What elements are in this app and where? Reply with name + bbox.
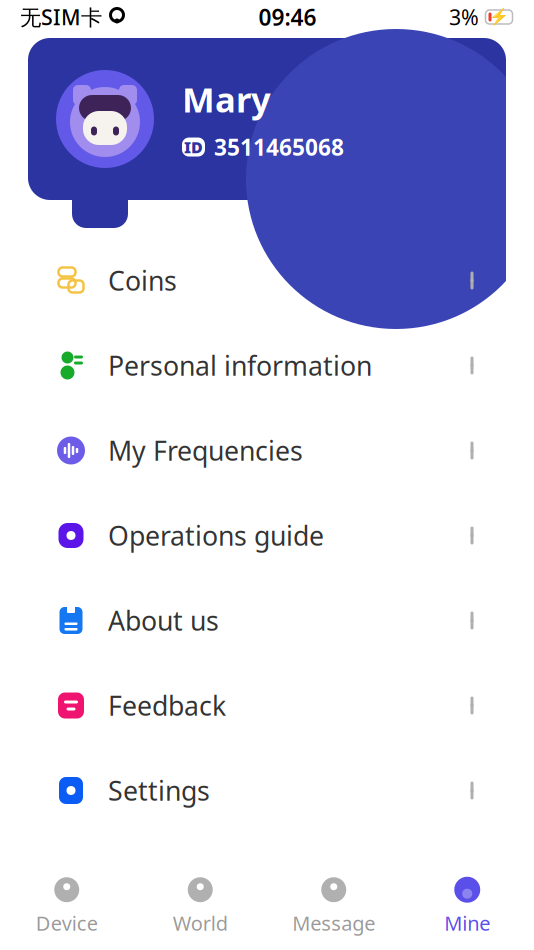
button[interactable]: World (133, 876, 267, 936)
staticText: 3511465068 (214, 132, 344, 162)
button[interactable]: Settings (0, 748, 534, 833)
button[interactable]: About us (0, 578, 534, 663)
staticText: Message (292, 910, 375, 936)
staticText: Operations guide (108, 518, 324, 553)
button[interactable]: My Frequencies (0, 408, 534, 493)
staticText: Feedback (108, 688, 226, 723)
staticText: ID (184, 136, 203, 158)
button[interactable]: Mine (400, 876, 534, 936)
staticText: Device (36, 910, 98, 936)
staticText: Coins (108, 263, 177, 298)
staticText: 09:46 (258, 2, 316, 32)
staticText: World (173, 910, 228, 936)
button[interactable]: Operations guide (0, 493, 534, 578)
staticText: My Frequencies (108, 433, 303, 468)
button[interactable]: Message (267, 876, 400, 936)
staticText: ⚡ (489, 8, 509, 26)
staticText: Mine (444, 910, 490, 936)
staticText: About us (108, 603, 219, 638)
staticText: 无SIM卡 (20, 3, 102, 31)
staticText: Settings (108, 773, 210, 808)
button[interactable]: Personal information (0, 323, 534, 408)
button[interactable]: Device (0, 876, 133, 936)
staticText: Personal information (108, 348, 372, 383)
staticText: 3% (449, 3, 479, 31)
staticText: Mary (182, 76, 271, 122)
button[interactable]: Coins (0, 238, 534, 323)
button[interactable]: Feedback (0, 663, 534, 748)
